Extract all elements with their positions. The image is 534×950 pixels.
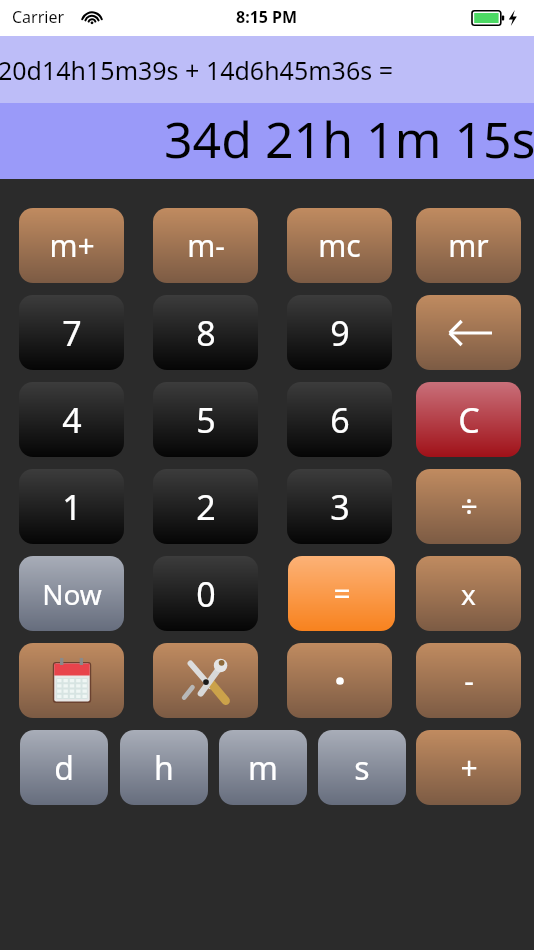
staticText: 7 [62,310,82,356]
button[interactable]: 7 [19,295,124,370]
staticText: C [458,397,480,443]
button[interactable]: d [20,730,108,805]
button[interactable]: 1 [19,469,124,544]
button[interactable]: 5 [153,382,258,457]
staticText: 3 [330,484,350,530]
staticText: 8:15 PM [236,6,298,28]
button[interactable]: ÷ [416,469,521,544]
staticText: 0 [196,571,216,617]
button[interactable]: = [288,556,395,631]
staticText: 34d 21h 1m 15s [164,105,534,173]
button[interactable]: 3 [287,469,392,544]
button[interactable]: 4 [19,382,124,457]
staticText: 6 [330,397,350,443]
staticText: mr [448,225,489,266]
staticText: Carrier [12,6,65,28]
staticText: d [54,746,74,790]
button[interactable]: 2 [153,469,258,544]
button[interactable]: Backspace [416,295,521,370]
button[interactable]: C [416,382,521,457]
staticText: Now [42,575,102,613]
button[interactable]: Calendar [19,643,124,718]
staticText: 5 [196,397,216,443]
staticText: m+ [49,225,95,266]
staticText: mc [318,225,361,266]
button[interactable]: mc [287,208,392,283]
button[interactable]: m [219,730,307,805]
staticText: - [464,660,474,701]
staticText: x [461,575,476,613]
button[interactable]: Settings [153,643,258,718]
staticText: m [248,746,278,790]
button[interactable]: 9 [287,295,392,370]
staticText: ÷ [460,486,478,527]
button[interactable]: Decimal point [287,643,392,718]
staticText: h [154,746,174,790]
button[interactable]: m- [153,208,258,283]
staticText: 8 [196,310,216,356]
staticText: 2 [196,484,216,530]
staticText: s [354,746,370,790]
staticText: + [460,747,478,788]
button[interactable]: + [416,730,521,805]
button[interactable]: - [416,643,521,718]
staticText: 4 [62,397,82,443]
button[interactable]: h [120,730,208,805]
staticText: = [333,573,351,614]
button[interactable]: s [318,730,406,805]
button[interactable]: 8 [153,295,258,370]
staticText: m- [187,225,225,266]
staticText: 9 [330,310,350,356]
button[interactable]: mr [416,208,521,283]
staticText: 1 [62,484,82,530]
button[interactable]: 6 [287,382,392,457]
button[interactable]: m+ [19,208,124,283]
button[interactable]: 0 [153,556,258,631]
button[interactable]: Now [19,556,124,631]
staticText: 20d14h15m39s + 14d6h45m36s = [0,53,393,87]
button[interactable]: x [416,556,521,631]
